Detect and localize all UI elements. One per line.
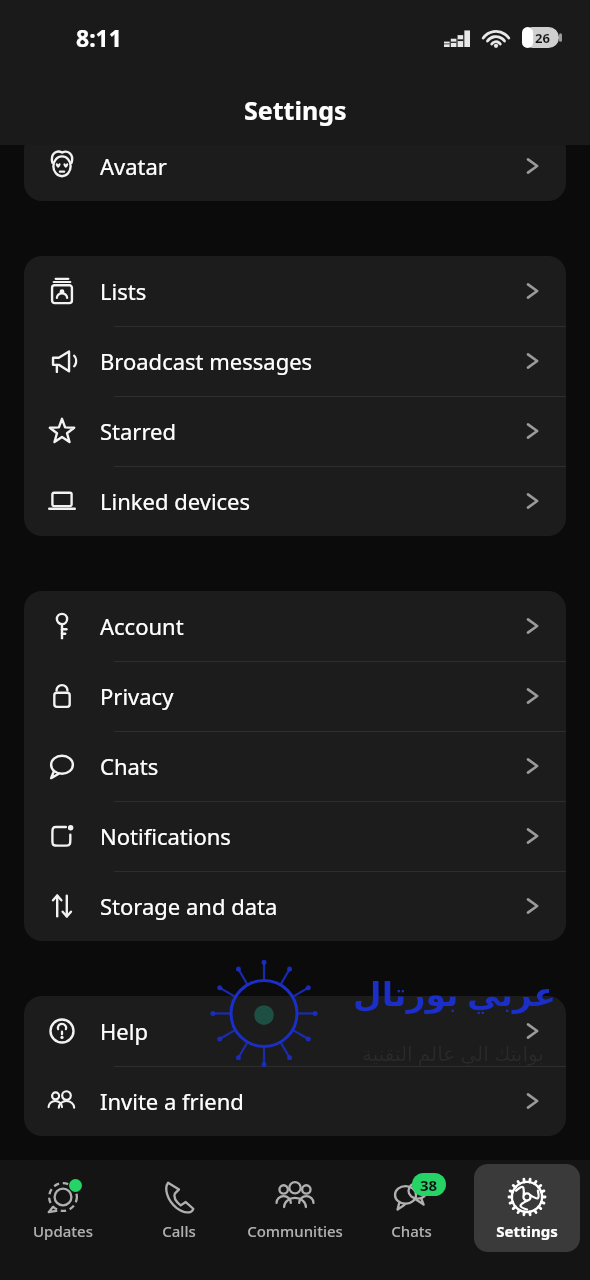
staticText: بوابتك الي عالم التقنية [362,1040,544,1067]
button[interactable]: 38 [358,1164,464,1252]
button[interactable]: Starred [24,396,566,466]
staticText: 8:11 [76,22,122,53]
button[interactable]: Notifications [24,801,566,871]
button[interactable]: Storage and data [24,871,566,941]
staticText: Linked devices [100,486,522,516]
staticText: Settings [244,93,347,127]
staticText: Settings [496,1221,558,1241]
staticText: Privacy [100,681,522,711]
staticText: Communities [247,1221,343,1241]
staticText: Starred [100,416,522,446]
staticText: 26 [535,29,550,47]
button[interactable]: Lists [24,256,566,326]
button[interactable]: Broadcast messages [24,326,566,396]
staticText: Help [100,1016,522,1046]
button[interactable]: Calls [126,1164,232,1252]
button[interactable]: Linked devices [24,466,566,536]
staticText: Lists [100,276,522,306]
staticText: Account [100,611,522,641]
staticText: Invite a friend [100,1086,522,1116]
button[interactable]: Help [24,996,566,1066]
staticText: Calls [162,1221,196,1241]
button[interactable]: Chats [24,731,566,801]
button[interactable]: Settings [474,1164,580,1252]
button[interactable]: Communities [242,1164,348,1252]
staticText: 38 [420,1175,438,1195]
button[interactable]: Avatar [24,131,566,201]
staticText: Notifications [100,821,522,851]
button[interactable]: Updates [10,1164,116,1252]
staticText: Storage and data [100,891,522,921]
button[interactable]: Account [24,591,566,661]
staticText: Avatar [100,151,522,181]
staticText: Updates [33,1221,93,1241]
button[interactable]: Invite a friend [24,1066,566,1136]
staticText: Chats [100,751,522,781]
staticText: Broadcast messages [100,346,522,376]
staticText: Chats [391,1221,432,1241]
button[interactable]: Privacy [24,661,566,731]
staticText: عربي بورتال [353,971,556,1016]
